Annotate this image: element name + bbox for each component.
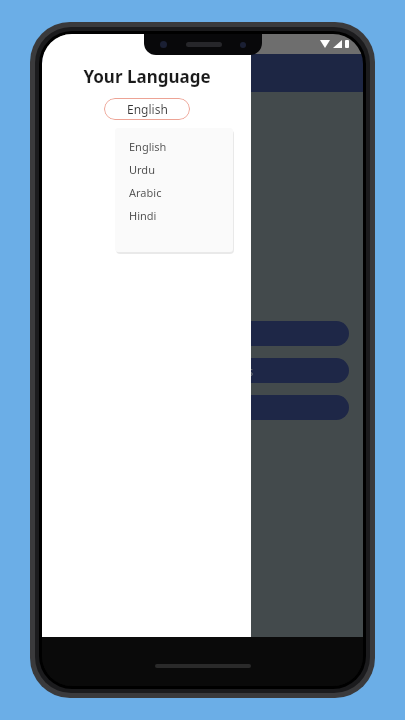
button[interactable]: English — [115, 135, 233, 158]
button[interactable]: Select Surah — [56, 321, 349, 346]
staticText: English — [127, 101, 168, 117]
button[interactable]: Urdu — [115, 158, 233, 181]
button[interactable]: Hindi — [115, 204, 233, 227]
staticText: Urdu — [129, 162, 155, 177]
staticText: Hindi — [129, 208, 157, 223]
button[interactable]: English — [104, 98, 190, 120]
button[interactable]: Arabic — [115, 181, 233, 204]
staticText: سُوۡرَة — [152, 262, 253, 309]
staticText: English — [129, 139, 167, 154]
staticText: Your Language — [83, 65, 211, 88]
button[interactable]: Download Images — [56, 358, 349, 383]
staticText: Download Images — [151, 363, 254, 379]
staticText: Arabic — [129, 185, 162, 200]
button[interactable]: Select Ayat — [56, 395, 349, 420]
staticText: Tarrtil e Tarmmil — [58, 64, 166, 83]
